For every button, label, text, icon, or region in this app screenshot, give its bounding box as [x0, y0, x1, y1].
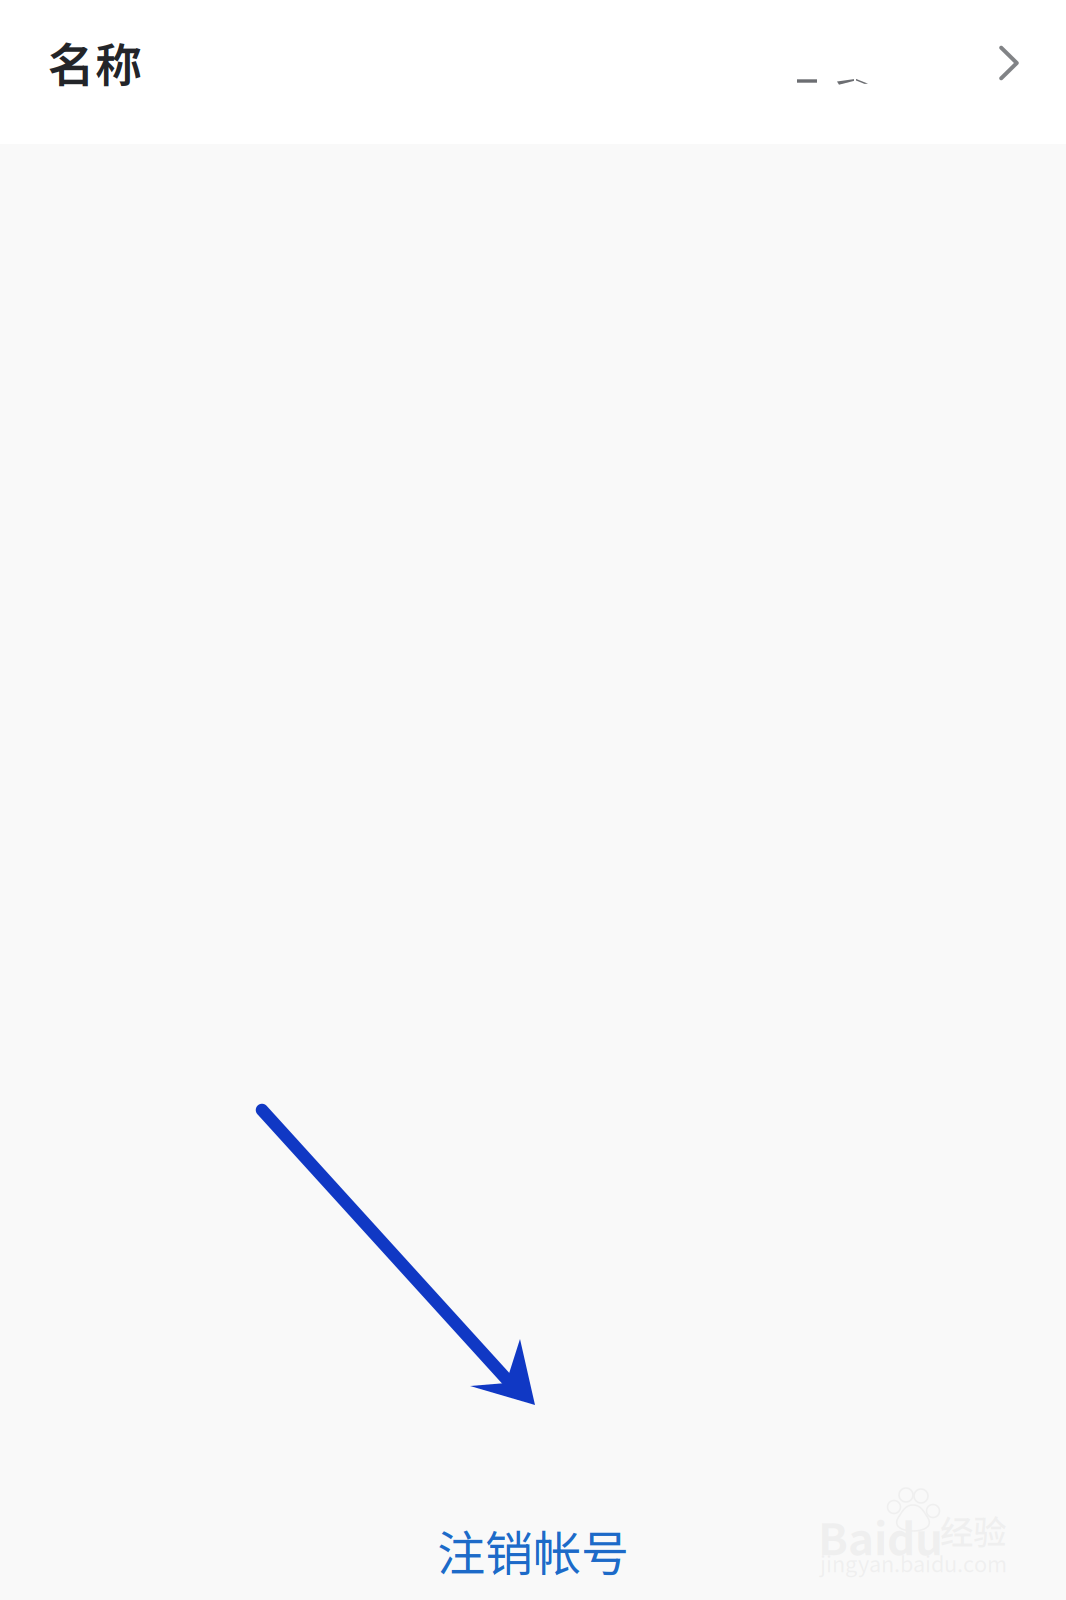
button[interactable]: 注销帐号 — [383, 1504, 683, 1596]
staticText: 名称 — [48, 28, 142, 96]
staticText: Baidu — [818, 1504, 943, 1568]
staticText: 注销帐号 — [437, 1515, 629, 1585]
staticText: jingyan.baidu.com — [820, 1547, 1007, 1578]
staticText: 经验 — [940, 1506, 1006, 1554]
button[interactable]: 名称 — [0, 0, 1066, 144]
